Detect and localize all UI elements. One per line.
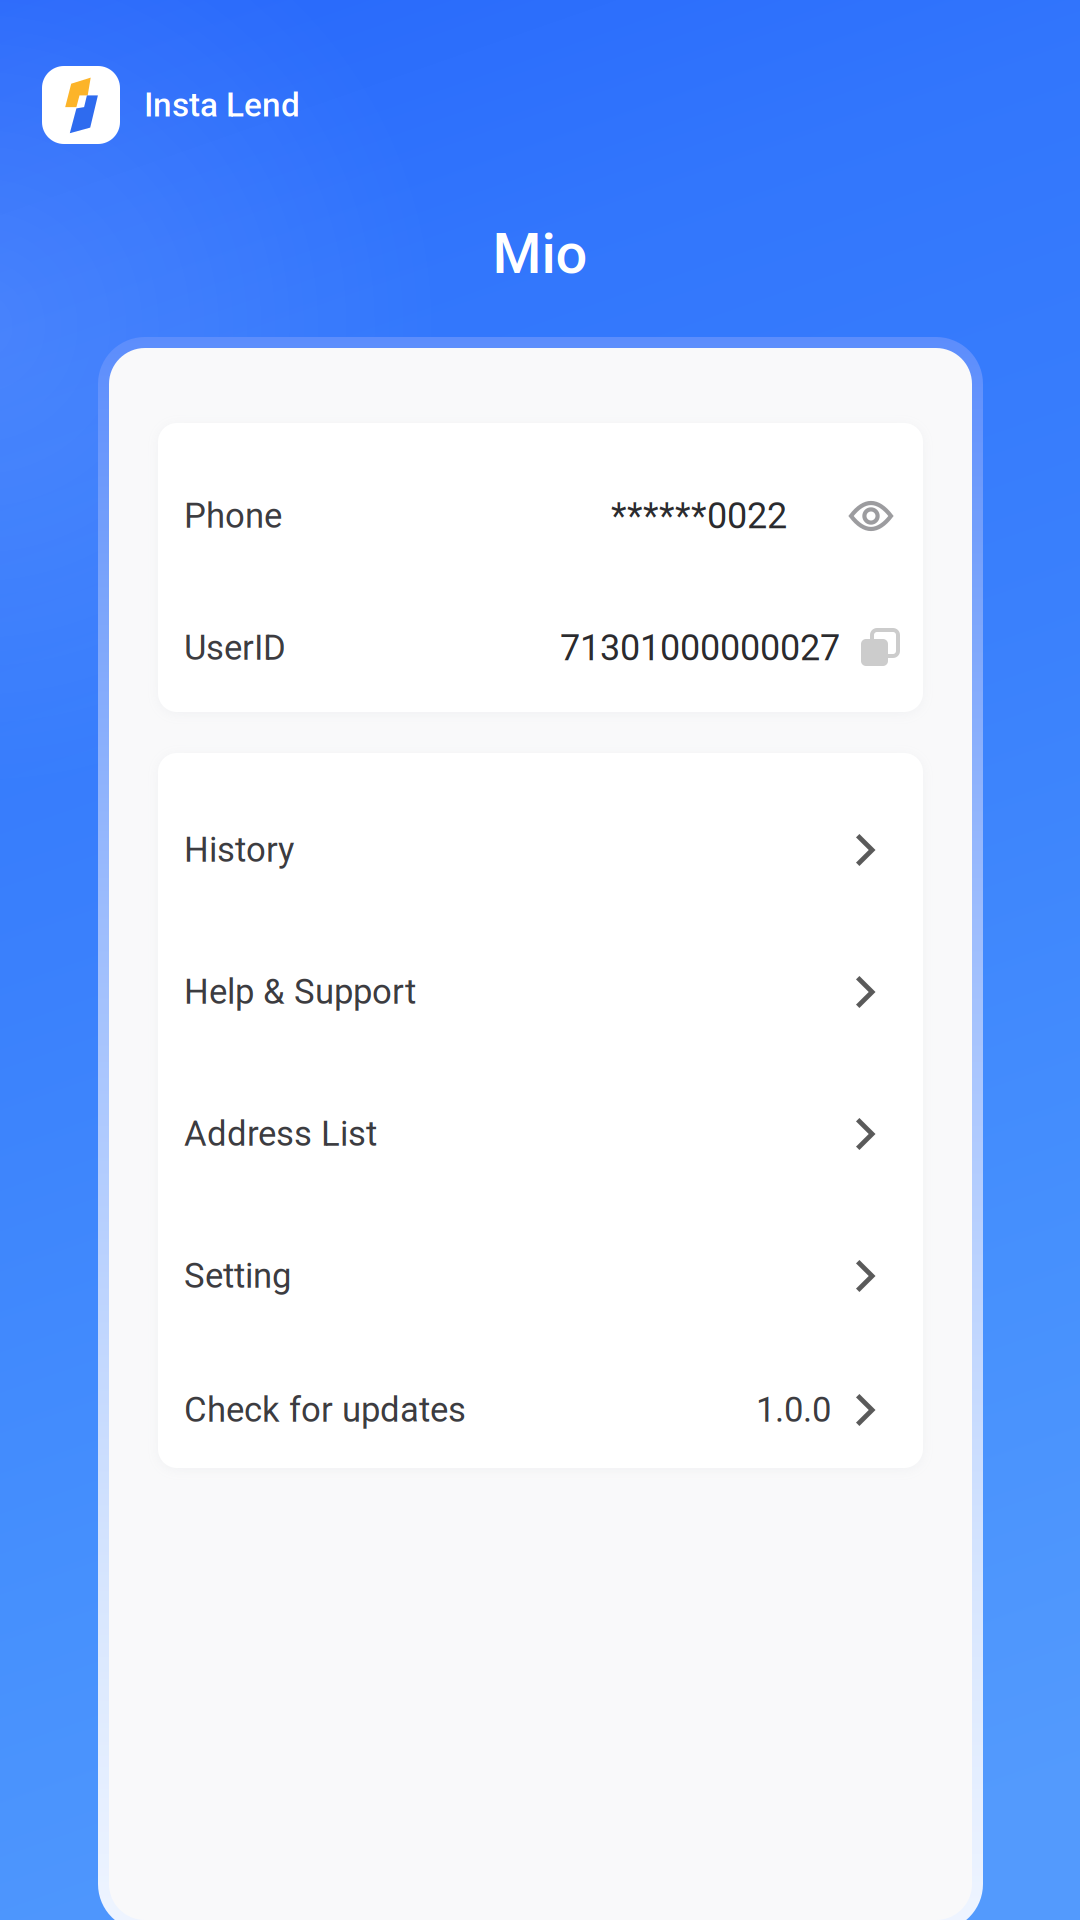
staticText: 71301000000027 xyxy=(560,627,840,669)
button[interactable]: Check for updates xyxy=(158,1347,923,1473)
button[interactable]: Show phone number xyxy=(787,488,893,544)
button[interactable]: Setting xyxy=(158,1205,923,1347)
staticText: History xyxy=(184,830,294,870)
staticText: ******0022 xyxy=(611,495,787,537)
staticText: Insta Lend xyxy=(144,85,300,125)
staticText: 1.0.0 xyxy=(756,1390,831,1430)
button[interactable]: Help & Support xyxy=(158,921,923,1063)
button[interactable]: History xyxy=(158,779,923,921)
staticText: Address List xyxy=(184,1114,377,1154)
staticText: Setting xyxy=(184,1256,291,1296)
button[interactable]: Copy user ID xyxy=(840,618,898,678)
staticText: UserID xyxy=(184,628,286,668)
staticText: Check for updates xyxy=(184,1390,466,1430)
staticText: Mio xyxy=(492,221,587,287)
staticText: Help & Support xyxy=(184,972,416,1012)
button[interactable]: Address List xyxy=(158,1063,923,1205)
staticText: Phone xyxy=(184,496,282,536)
